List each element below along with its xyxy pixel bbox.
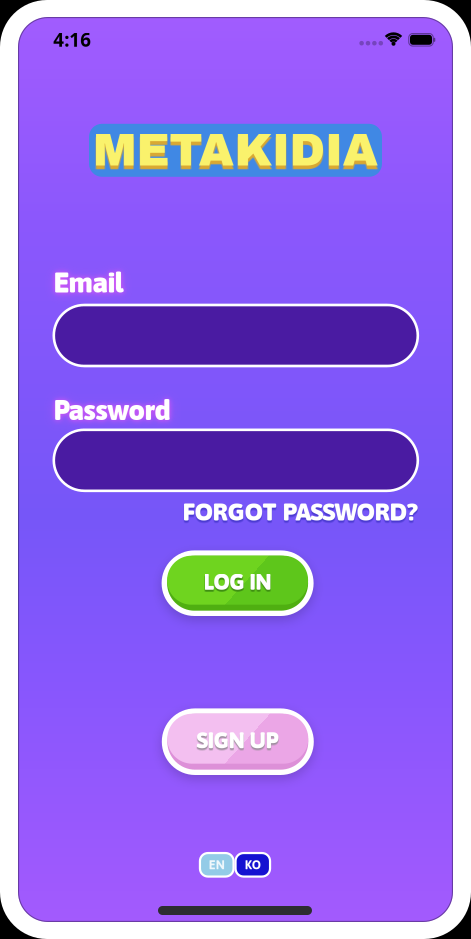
staticText: KO <box>245 857 261 872</box>
button[interactable]: FORGOT PASSWORD? <box>183 497 418 526</box>
staticText: Email <box>54 266 123 299</box>
button[interactable]: KO <box>235 853 270 876</box>
staticText: FORGOT PASSWORD? <box>183 497 418 526</box>
staticText: LOG IN <box>204 569 272 594</box>
button[interactable]: EN <box>200 853 233 876</box>
staticText: EN <box>209 857 225 872</box>
button[interactable]: SIGN UP <box>162 708 314 775</box>
staticText: 4:16 <box>53 27 91 52</box>
button[interactable]: LOG IN <box>162 550 314 616</box>
staticText: SIGN UP <box>197 727 279 753</box>
button[interactable]: Email <box>54 305 418 366</box>
button[interactable]: Password <box>54 430 418 491</box>
staticText: Password <box>54 394 171 426</box>
staticText: METAKIDIA <box>92 125 378 175</box>
